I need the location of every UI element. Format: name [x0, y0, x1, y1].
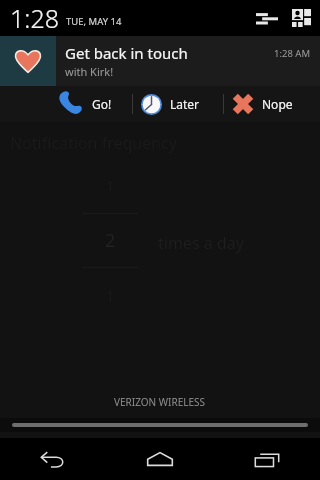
button[interactable]: Get back in touch: [0, 36, 320, 86]
staticText: times a day: [158, 232, 244, 254]
staticText: Later: [170, 96, 200, 112]
button[interactable]: Back: [0, 438, 106, 480]
staticText: Get back in touch: [65, 43, 188, 63]
button[interactable]: Recent apps: [213, 438, 320, 480]
staticText: 1:28: [10, 1, 59, 35]
button[interactable]: Nope: [224, 86, 314, 122]
button[interactable]: Home: [106, 438, 213, 480]
staticText: VERIZON WIRELESS: [114, 395, 206, 409]
button[interactable]: Drag handle: [12, 423, 308, 427]
staticText: TUE, MAY 14: [66, 15, 122, 28]
staticText: with Kirk!: [65, 64, 114, 79]
staticText: Nope: [262, 96, 293, 112]
staticText: 1:28 AM: [274, 47, 311, 60]
button[interactable]: Go!: [58, 86, 132, 122]
button[interactable]: Later: [133, 86, 223, 122]
staticText: 2: [105, 228, 116, 253]
staticText: Go!: [92, 96, 112, 112]
